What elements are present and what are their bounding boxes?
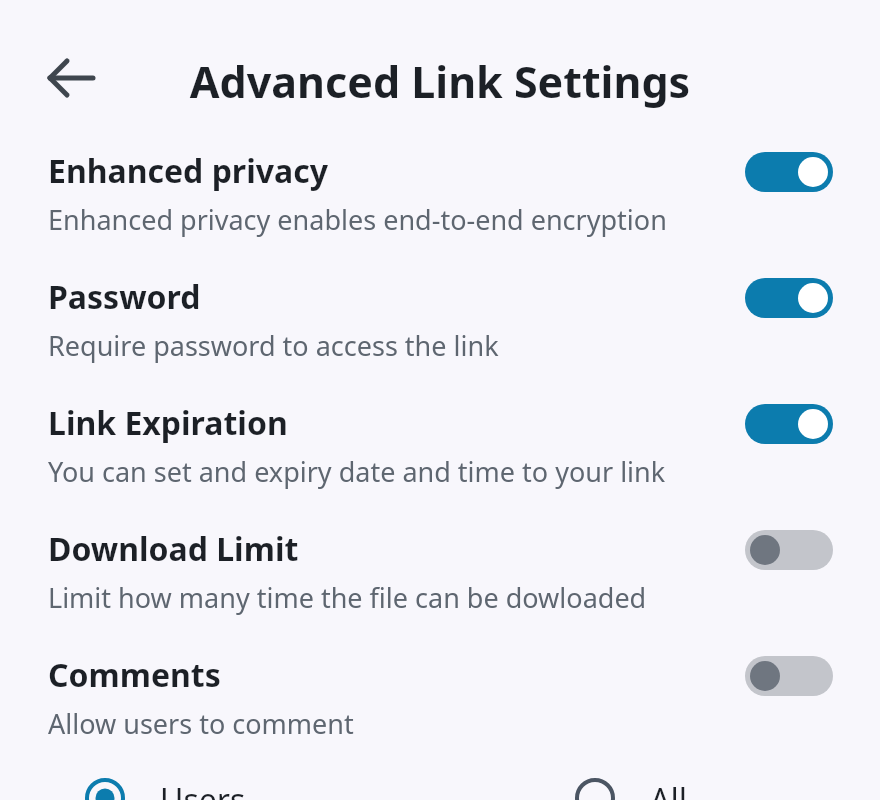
button[interactable]: Link Expiration <box>0 400 880 512</box>
staticText: You can set and expiry date and time to … <box>48 453 666 490</box>
staticText: All <box>650 778 687 800</box>
staticText: Advanced Link Settings <box>160 52 720 111</box>
button[interactable]: Enhanced privacy <box>0 148 880 260</box>
button[interactable]: Password <box>0 274 880 386</box>
button[interactable]: Enabled <box>745 404 833 444</box>
staticText: Allow users to comment <box>48 705 354 742</box>
button[interactable]: Back <box>34 48 94 108</box>
button[interactable]: Download Limit <box>0 526 880 638</box>
button[interactable]: All <box>562 756 822 800</box>
staticText: Enhanced privacy <box>48 149 328 193</box>
staticText: Download Limit <box>48 527 299 571</box>
staticText: Require password to access the link <box>48 327 499 364</box>
staticText: Users <box>160 778 246 800</box>
button[interactable]: Comments <box>0 652 880 764</box>
staticText: Comments <box>48 653 221 697</box>
staticText: Limit how many time the file can be dowl… <box>48 579 647 616</box>
button[interactable]: Enabled <box>745 152 833 192</box>
button[interactable]: Disabled <box>745 656 833 696</box>
button[interactable]: Disabled <box>745 530 833 570</box>
staticText: Password <box>48 275 201 319</box>
button[interactable]: Users <box>72 756 372 800</box>
staticText: Enhanced privacy enables end-to-end encr… <box>48 201 667 238</box>
staticText: Link Expiration <box>48 401 288 445</box>
button[interactable]: Enabled <box>745 278 833 318</box>
